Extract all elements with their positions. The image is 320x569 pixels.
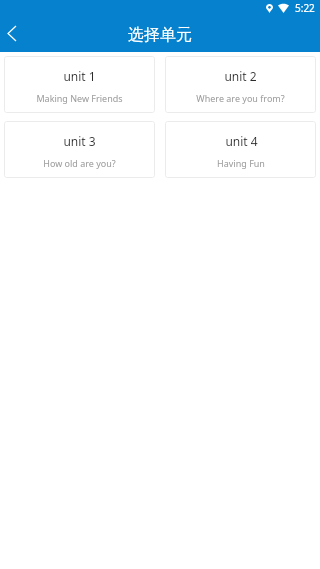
button[interactable]: unit 4: [165, 121, 316, 178]
staticText: Making New Friends: [36, 92, 123, 104]
staticText: 选择单元: [128, 25, 192, 45]
staticText: unit 4: [225, 133, 258, 149]
staticText: unit 2: [224, 68, 257, 84]
button[interactable]: unit 1: [4, 56, 155, 113]
button[interactable]: Back: [0, 20, 32, 52]
staticText: unit 3: [63, 133, 96, 149]
staticText: Having Fun: [217, 157, 265, 169]
staticText: How old are you?: [43, 157, 116, 169]
staticText: Where are you from?: [196, 92, 285, 104]
button[interactable]: unit 3: [4, 121, 155, 178]
button[interactable]: unit 2: [165, 56, 316, 113]
staticText: unit 1: [63, 68, 96, 84]
staticText: 5:22: [295, 1, 315, 15]
